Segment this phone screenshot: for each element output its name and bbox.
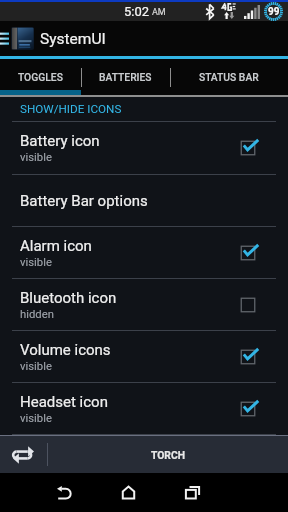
staticText: Battery Bar options	[20, 192, 148, 210]
button[interactable]: Checked	[224, 126, 272, 170]
staticText: 5:02	[124, 4, 150, 19]
staticText: Battery icon	[20, 132, 100, 150]
staticText: SHOW/HIDE ICONS	[20, 102, 122, 116]
staticText: visible	[20, 412, 52, 425]
staticText: STATUS BAR	[199, 71, 259, 83]
button[interactable]: STATUS BAR	[170, 59, 288, 95]
button[interactable]: Back	[32, 473, 96, 512]
staticText: visible	[20, 151, 52, 164]
staticText: BATTERIES	[99, 71, 152, 83]
button[interactable]: TOGGLES	[0, 59, 81, 95]
staticText: AM	[152, 7, 166, 18]
button[interactable]: Battery Bar options	[0, 175, 288, 227]
button[interactable]: Volume icons	[0, 331, 288, 383]
button[interactable]: Reset	[0, 436, 47, 473]
staticText: Headset icon	[20, 393, 108, 411]
button[interactable]: Navigate up	[0, 21, 10, 56]
staticText: SystemUI	[40, 30, 106, 48]
button[interactable]: Battery icon	[0, 122, 288, 175]
button[interactable]: TORCH	[48, 436, 288, 473]
staticText: Volume icons	[20, 341, 111, 359]
button[interactable]: Checked	[224, 335, 272, 379]
staticText: hidden	[20, 308, 54, 321]
staticText: Alarm icon	[20, 237, 92, 255]
staticText: TORCH	[151, 449, 185, 461]
button[interactable]: Unchecked	[224, 283, 272, 327]
staticText: visible	[20, 256, 52, 269]
button[interactable]: Headset icon	[0, 383, 288, 435]
button[interactable]: Home	[96, 473, 160, 512]
staticText: visible	[20, 360, 52, 373]
button[interactable]: Checked	[224, 387, 272, 431]
button[interactable]: BATTERIES	[81, 59, 170, 95]
staticText: TOGGLES	[18, 71, 63, 83]
button[interactable]: Alarm icon	[0, 227, 288, 279]
button[interactable]: Bluetooth icon	[0, 279, 288, 331]
button[interactable]: Checked	[224, 231, 272, 275]
staticText: Bluetooth icon	[20, 289, 117, 307]
button[interactable]: Recent apps	[160, 473, 224, 512]
staticText: 99	[268, 6, 280, 18]
